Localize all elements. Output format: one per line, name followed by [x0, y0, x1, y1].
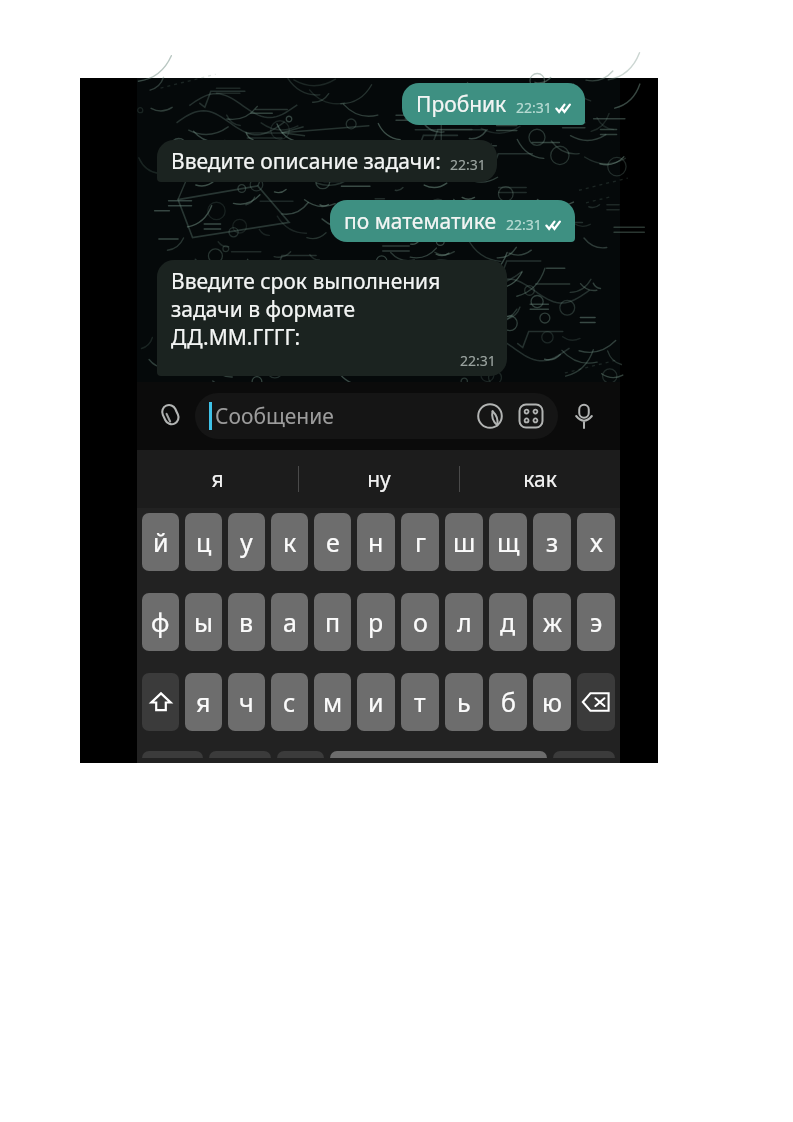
- staticText: п: [325, 605, 341, 639]
- button[interactable]: ж: [533, 593, 571, 651]
- staticText: ч: [239, 685, 254, 719]
- button[interactable]: я: [137, 450, 298, 508]
- button[interactable]: Stickers: [471, 397, 509, 435]
- button[interactable]: у: [228, 513, 265, 571]
- button[interactable]: Сообщение: [195, 393, 558, 439]
- staticText: л: [457, 605, 472, 639]
- button[interactable]: я: [185, 673, 222, 731]
- button[interactable]: Введите описание задачи:: [157, 140, 497, 182]
- staticText: Сообщение: [215, 402, 334, 431]
- button[interactable]: Shift: [142, 673, 179, 731]
- staticText: Пробник: [416, 90, 507, 119]
- staticText: как: [523, 465, 557, 494]
- staticText: г: [415, 525, 426, 559]
- staticText: к: [283, 525, 297, 559]
- staticText: т: [414, 685, 426, 719]
- button[interactable]: б: [489, 673, 527, 731]
- staticText: щ: [497, 525, 520, 559]
- button[interactable]: Key: [330, 751, 547, 758]
- staticText: х: [590, 525, 603, 559]
- staticText: 22:31: [460, 351, 496, 370]
- button[interactable]: л: [445, 593, 483, 651]
- button[interactable]: н: [357, 513, 395, 571]
- staticText: е: [326, 525, 340, 559]
- button[interactable]: Backspace: [577, 673, 615, 731]
- button[interactable]: и: [357, 673, 395, 731]
- staticText: з: [546, 525, 559, 559]
- button[interactable]: г: [401, 513, 439, 571]
- staticText: Введите срок выполнения задачи в формате…: [171, 267, 441, 351]
- staticText: д: [500, 605, 516, 639]
- staticText: в: [239, 605, 254, 639]
- staticText: ы: [194, 605, 213, 639]
- button[interactable]: е: [314, 513, 351, 571]
- staticText: о: [413, 605, 428, 639]
- staticText: м: [323, 685, 343, 719]
- button[interactable]: Attach: [147, 392, 195, 440]
- staticText: р: [368, 605, 384, 639]
- button[interactable]: э: [577, 593, 615, 651]
- button[interactable]: д: [489, 593, 527, 651]
- staticText: ну: [367, 465, 391, 494]
- staticText: я: [211, 465, 224, 494]
- staticText: с: [283, 685, 296, 719]
- staticText: ю: [542, 685, 562, 719]
- staticText: 22:31: [450, 155, 486, 174]
- button[interactable]: з: [533, 513, 571, 571]
- staticText: ж: [543, 605, 562, 639]
- button[interactable]: Key: [277, 751, 324, 758]
- button[interactable]: т: [401, 673, 439, 731]
- button[interactable]: с: [271, 673, 308, 731]
- button[interactable]: Введите срок выполнения задачи в формате…: [157, 260, 507, 376]
- button[interactable]: ну: [299, 450, 459, 508]
- staticText: 22:31: [506, 215, 542, 234]
- button[interactable]: Key: [142, 751, 203, 758]
- button[interactable]: как: [460, 450, 620, 508]
- staticText: н: [368, 525, 384, 559]
- button[interactable]: й: [142, 513, 179, 571]
- staticText: и: [368, 685, 384, 719]
- button[interactable]: в: [228, 593, 265, 651]
- button[interactable]: к: [271, 513, 308, 571]
- staticText: ш: [453, 525, 476, 559]
- button[interactable]: а: [271, 593, 308, 651]
- staticText: ф: [151, 605, 170, 639]
- staticText: б: [501, 685, 516, 719]
- button[interactable]: ц: [185, 513, 222, 571]
- button[interactable]: ш: [445, 513, 483, 571]
- button[interactable]: Key: [209, 751, 271, 758]
- staticText: по математике: [344, 207, 497, 236]
- staticText: ь: [457, 685, 471, 719]
- button[interactable]: х: [577, 513, 615, 571]
- button[interactable]: м: [314, 673, 351, 731]
- button[interactable]: Пробник: [402, 83, 585, 125]
- button[interactable]: р: [357, 593, 395, 651]
- button[interactable]: ф: [142, 593, 179, 651]
- button[interactable]: Keyboard layouts: [512, 397, 550, 435]
- staticText: ц: [196, 525, 212, 559]
- button[interactable]: ь: [445, 673, 483, 731]
- staticText: у: [240, 525, 253, 559]
- button[interactable]: п: [314, 593, 351, 651]
- staticText: я: [196, 685, 211, 719]
- button[interactable]: ч: [228, 673, 265, 731]
- button[interactable]: Key: [553, 751, 615, 758]
- button[interactable]: по математике: [330, 200, 575, 242]
- button[interactable]: о: [401, 593, 439, 651]
- staticText: а: [283, 605, 297, 639]
- button[interactable]: ю: [533, 673, 571, 731]
- button[interactable]: щ: [489, 513, 527, 571]
- button[interactable]: ы: [185, 593, 222, 651]
- staticText: э: [590, 605, 603, 639]
- staticText: Введите описание задачи:: [171, 147, 441, 176]
- staticText: й: [153, 525, 169, 559]
- staticText: 22:31: [516, 98, 552, 117]
- button[interactable]: Voice message: [558, 390, 610, 442]
